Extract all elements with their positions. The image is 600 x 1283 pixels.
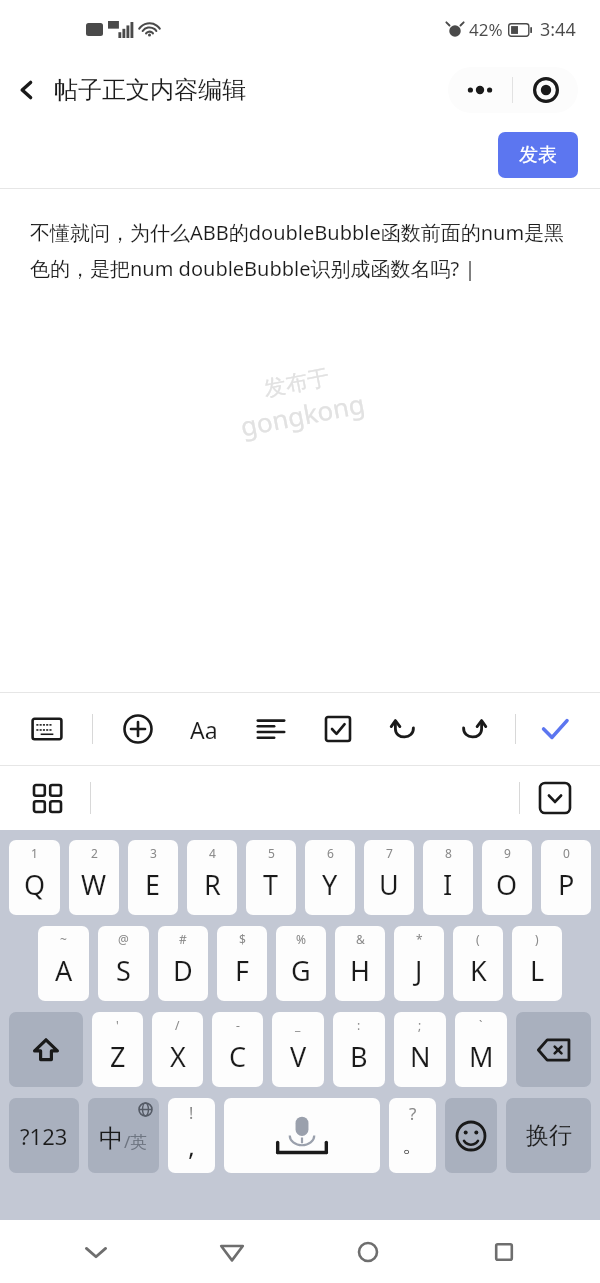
button[interactable]: ) <box>512 926 562 1001</box>
staticText: U <box>379 866 399 903</box>
button[interactable]: / <box>152 1012 203 1087</box>
button[interactable]: 0 <box>541 840 591 915</box>
staticText: ? <box>409 1102 417 1125</box>
staticText: , <box>188 1128 195 1163</box>
staticText: X <box>170 1038 186 1075</box>
button[interactable]: 5 <box>246 840 296 915</box>
button[interactable]: : <box>333 1012 385 1087</box>
staticText: _ <box>295 1017 301 1033</box>
button[interactable]: Recents <box>476 1224 532 1280</box>
staticText: A <box>55 952 73 989</box>
button[interactable]: 7 <box>364 840 414 915</box>
staticText: 发布于 <box>262 363 332 403</box>
button[interactable]: Keyboard <box>24 706 70 752</box>
button[interactable]: 9 <box>482 840 532 915</box>
button[interactable]: $ <box>217 926 267 1001</box>
button[interactable]: Hide keyboard <box>68 1224 124 1280</box>
button[interactable]: Back <box>204 1224 260 1280</box>
button[interactable]: Record <box>513 67 578 113</box>
staticText: 9 <box>504 845 511 861</box>
button[interactable]: Home <box>340 1224 396 1280</box>
staticText: 。 <box>402 1131 424 1159</box>
button[interactable]: More options <box>448 67 512 113</box>
staticText: N <box>410 1038 431 1075</box>
staticText: V <box>290 1038 307 1075</box>
staticText: J <box>415 952 423 989</box>
button[interactable]: ~ <box>38 926 89 1001</box>
staticText: L <box>530 952 545 989</box>
staticText: ?123 <box>20 1121 68 1151</box>
staticText: B <box>350 1038 368 1075</box>
staticText: ~ <box>60 931 67 947</box>
button[interactable]: 8 <box>423 840 473 915</box>
staticText: 3:44 <box>540 17 576 42</box>
staticText: 42% <box>469 18 503 41</box>
button[interactable]: & <box>335 926 385 1001</box>
button[interactable]: - <box>212 1012 263 1087</box>
button[interactable]: 3 <box>128 840 178 915</box>
button[interactable]: Shift <box>9 1012 83 1087</box>
staticText: : <box>357 1017 361 1033</box>
button[interactable]: Backspace <box>516 1012 591 1087</box>
button[interactable]: 2 <box>69 840 119 915</box>
staticText: F <box>235 952 250 989</box>
button[interactable]: Back <box>0 63 54 117</box>
staticText: / <box>175 1017 180 1033</box>
button[interactable]: # <box>158 926 208 1001</box>
button[interactable]: ' <box>92 1012 143 1087</box>
staticText: $ <box>239 931 246 947</box>
button[interactable]: % <box>276 926 326 1001</box>
staticText: ; <box>418 1017 422 1033</box>
button[interactable]: Add <box>115 706 161 752</box>
staticText: 7 <box>386 845 393 861</box>
staticText: ` <box>479 1017 483 1033</box>
button[interactable]: ` <box>455 1012 507 1087</box>
button[interactable]: Done <box>532 706 578 752</box>
staticText: P <box>558 866 575 903</box>
button[interactable]: _ <box>272 1012 324 1087</box>
button[interactable]: @ <box>98 926 149 1001</box>
staticText: G <box>291 952 311 989</box>
button[interactable]: Switch language <box>88 1098 159 1173</box>
button[interactable]: ; <box>394 1012 446 1087</box>
staticText: # <box>179 931 187 947</box>
staticText: ' <box>116 1017 119 1033</box>
staticText: 2 <box>91 845 98 861</box>
staticText: Y <box>322 866 338 903</box>
staticText: & <box>356 931 365 947</box>
staticText: M <box>469 1038 494 1075</box>
button[interactable]: ? <box>389 1098 436 1173</box>
staticText: W <box>81 866 107 903</box>
button[interactable]: Undo <box>382 706 428 752</box>
staticText: - <box>236 1017 240 1033</box>
button[interactable]: Checklist <box>315 706 361 752</box>
button[interactable]: 4 <box>187 840 237 915</box>
button[interactable]: 1 <box>9 840 60 915</box>
button[interactable]: 6 <box>305 840 355 915</box>
staticText: H <box>350 952 371 989</box>
button[interactable]: 发表 <box>498 132 578 178</box>
staticText: Z <box>110 1038 126 1075</box>
staticText: 换行 <box>526 1121 572 1150</box>
staticText: E <box>145 866 161 903</box>
staticText: ! <box>189 1102 194 1124</box>
button[interactable]: ( <box>453 926 503 1001</box>
staticText: % <box>296 931 306 947</box>
button[interactable]: Space <box>224 1098 380 1173</box>
staticText: ) <box>535 931 539 947</box>
button[interactable]: ?123 <box>9 1098 79 1173</box>
button[interactable]: ! <box>168 1098 215 1173</box>
button[interactable]: Text style <box>181 706 227 752</box>
button[interactable]: Redo <box>449 706 495 752</box>
button[interactable]: Collapse keyboard <box>532 775 578 821</box>
staticText: 0 <box>563 845 570 861</box>
staticText: @ <box>118 931 129 947</box>
button[interactable]: Panels <box>24 775 70 821</box>
button[interactable]: Align <box>248 706 294 752</box>
staticText: T <box>263 866 279 903</box>
button[interactable]: * <box>394 926 444 1001</box>
staticText: 8 <box>445 845 452 861</box>
button[interactable]: 换行 <box>506 1098 591 1173</box>
staticText: 6 <box>327 845 334 861</box>
button[interactable]: Emoji <box>445 1098 497 1173</box>
